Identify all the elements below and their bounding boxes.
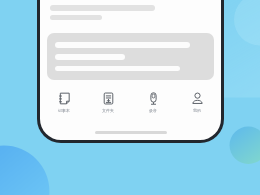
- staticText: 文件夹: [102, 108, 114, 113]
- staticText: 我的: [193, 108, 201, 113]
- button[interactable]: Profile: [177, 90, 217, 113]
- button[interactable]: Notes: [44, 90, 84, 113]
- staticText: 录音: [149, 108, 157, 113]
- button[interactable]: Recorder: [133, 90, 173, 113]
- button[interactable]: Documents: [88, 90, 128, 113]
- staticText: 记事本: [58, 108, 70, 113]
- button[interactable]: [47, 33, 214, 80]
